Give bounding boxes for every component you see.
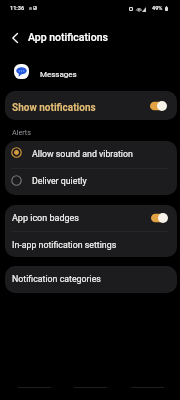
button[interactable]: Show notifications [5,91,177,120]
staticText: Show notifications [12,102,150,114]
staticText: Notification categories [12,274,101,284]
button[interactable]: App icon badges [5,205,177,231]
staticText: Allow sound and vibration [32,149,133,159]
button[interactable]: Notification categories [5,266,177,293]
button[interactable]: Deliver quietly [5,169,177,195]
button[interactable]: Allow sound and vibration [5,141,177,168]
staticText: Deliver quietly [32,176,87,186]
button[interactable]: Back [1,24,28,51]
staticText: In-app notification settings [12,240,117,250]
button[interactable]: Back [124,376,170,398]
staticText: Messages [40,70,77,79]
button[interactable]: In-app notification settings [5,232,177,257]
button[interactable]: Recent apps [11,376,57,398]
staticText: 11:36 [10,5,25,12]
staticText: App notifications [28,31,108,43]
staticText: 49% [152,5,163,12]
staticText: Alerts [12,128,31,136]
button[interactable]: Home [67,376,113,398]
staticText: App icon badges [12,213,151,224]
